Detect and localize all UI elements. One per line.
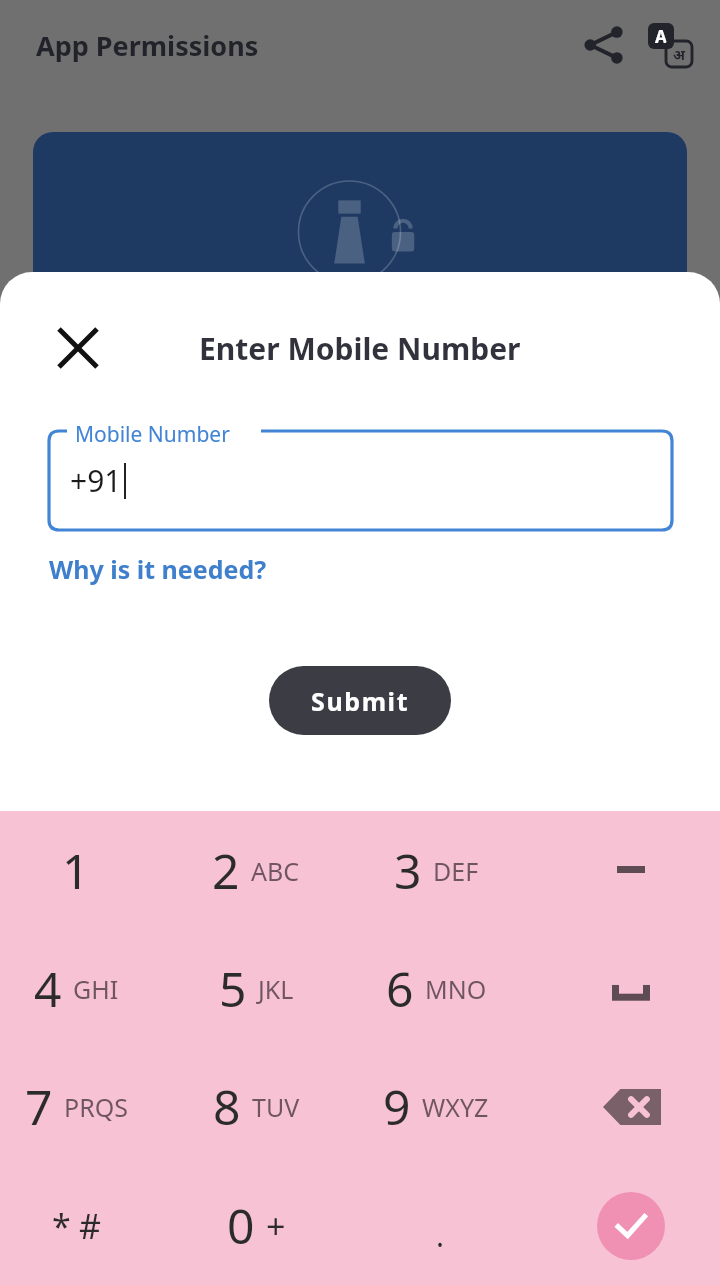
button[interactable]: [33, 132, 687, 332]
button[interactable]: 2: [180, 811, 360, 929]
staticText: 6: [386, 956, 414, 1021]
button[interactable]: Dash: [540, 811, 720, 929]
staticText: +: [266, 1203, 286, 1249]
staticText: 4: [34, 956, 62, 1021]
staticText: 8: [213, 1074, 241, 1139]
staticText: JKL: [258, 972, 294, 1006]
staticText: Submit: [311, 684, 410, 718]
button[interactable]: Translate language: [642, 17, 698, 73]
button[interactable]: 7: [0, 1047, 180, 1166]
button[interactable]: 4: [0, 929, 180, 1047]
staticText: MNO: [425, 972, 487, 1006]
button[interactable]: Mobile Number: [49, 431, 672, 530]
staticText: ABC: [251, 854, 300, 888]
staticText: +91: [70, 460, 122, 501]
staticText: TUV: [252, 1090, 300, 1124]
staticText: 9: [383, 1074, 411, 1139]
staticText: 7: [25, 1074, 53, 1139]
button[interactable]: 9: [360, 1047, 540, 1166]
button[interactable]: 8: [180, 1047, 360, 1166]
button[interactable]: 5: [180, 929, 360, 1047]
button[interactable]: Backspace: [540, 1047, 720, 1166]
staticText: App Permissions: [36, 27, 259, 64]
button[interactable]: Share: [576, 17, 632, 73]
staticText: GHI: [73, 972, 119, 1006]
button[interactable]: Done: [540, 1166, 720, 1285]
staticText: #: [79, 1203, 101, 1249]
staticText: .: [436, 1215, 445, 1256]
staticText: A: [655, 25, 667, 48]
staticText: 0: [227, 1193, 255, 1258]
staticText: *: [52, 1203, 71, 1249]
staticText: 2: [212, 838, 240, 903]
button[interactable]: 3: [360, 811, 540, 929]
staticText: अ: [673, 45, 685, 64]
staticText: 5: [219, 956, 247, 1021]
button[interactable]: 6: [360, 929, 540, 1047]
button[interactable]: Submit: [269, 666, 451, 735]
staticText: 3: [394, 838, 422, 903]
staticText: Why is it needed?: [49, 552, 267, 586]
button[interactable]: Space: [540, 929, 720, 1047]
staticText: PRQS: [64, 1090, 128, 1124]
button[interactable]: .: [360, 1166, 540, 1285]
staticText: DEF: [433, 854, 479, 888]
button[interactable]: 1: [0, 811, 180, 929]
button[interactable]: *: [0, 1166, 180, 1285]
staticText: Enter Mobile Number: [199, 328, 521, 369]
staticText: Mobile Number: [75, 420, 230, 449]
button[interactable]: 0: [180, 1166, 360, 1285]
staticText: WXYZ: [422, 1090, 489, 1124]
button[interactable]: Why is it needed?: [49, 552, 267, 586]
staticText: 1: [62, 838, 90, 903]
button[interactable]: Close: [50, 320, 106, 376]
